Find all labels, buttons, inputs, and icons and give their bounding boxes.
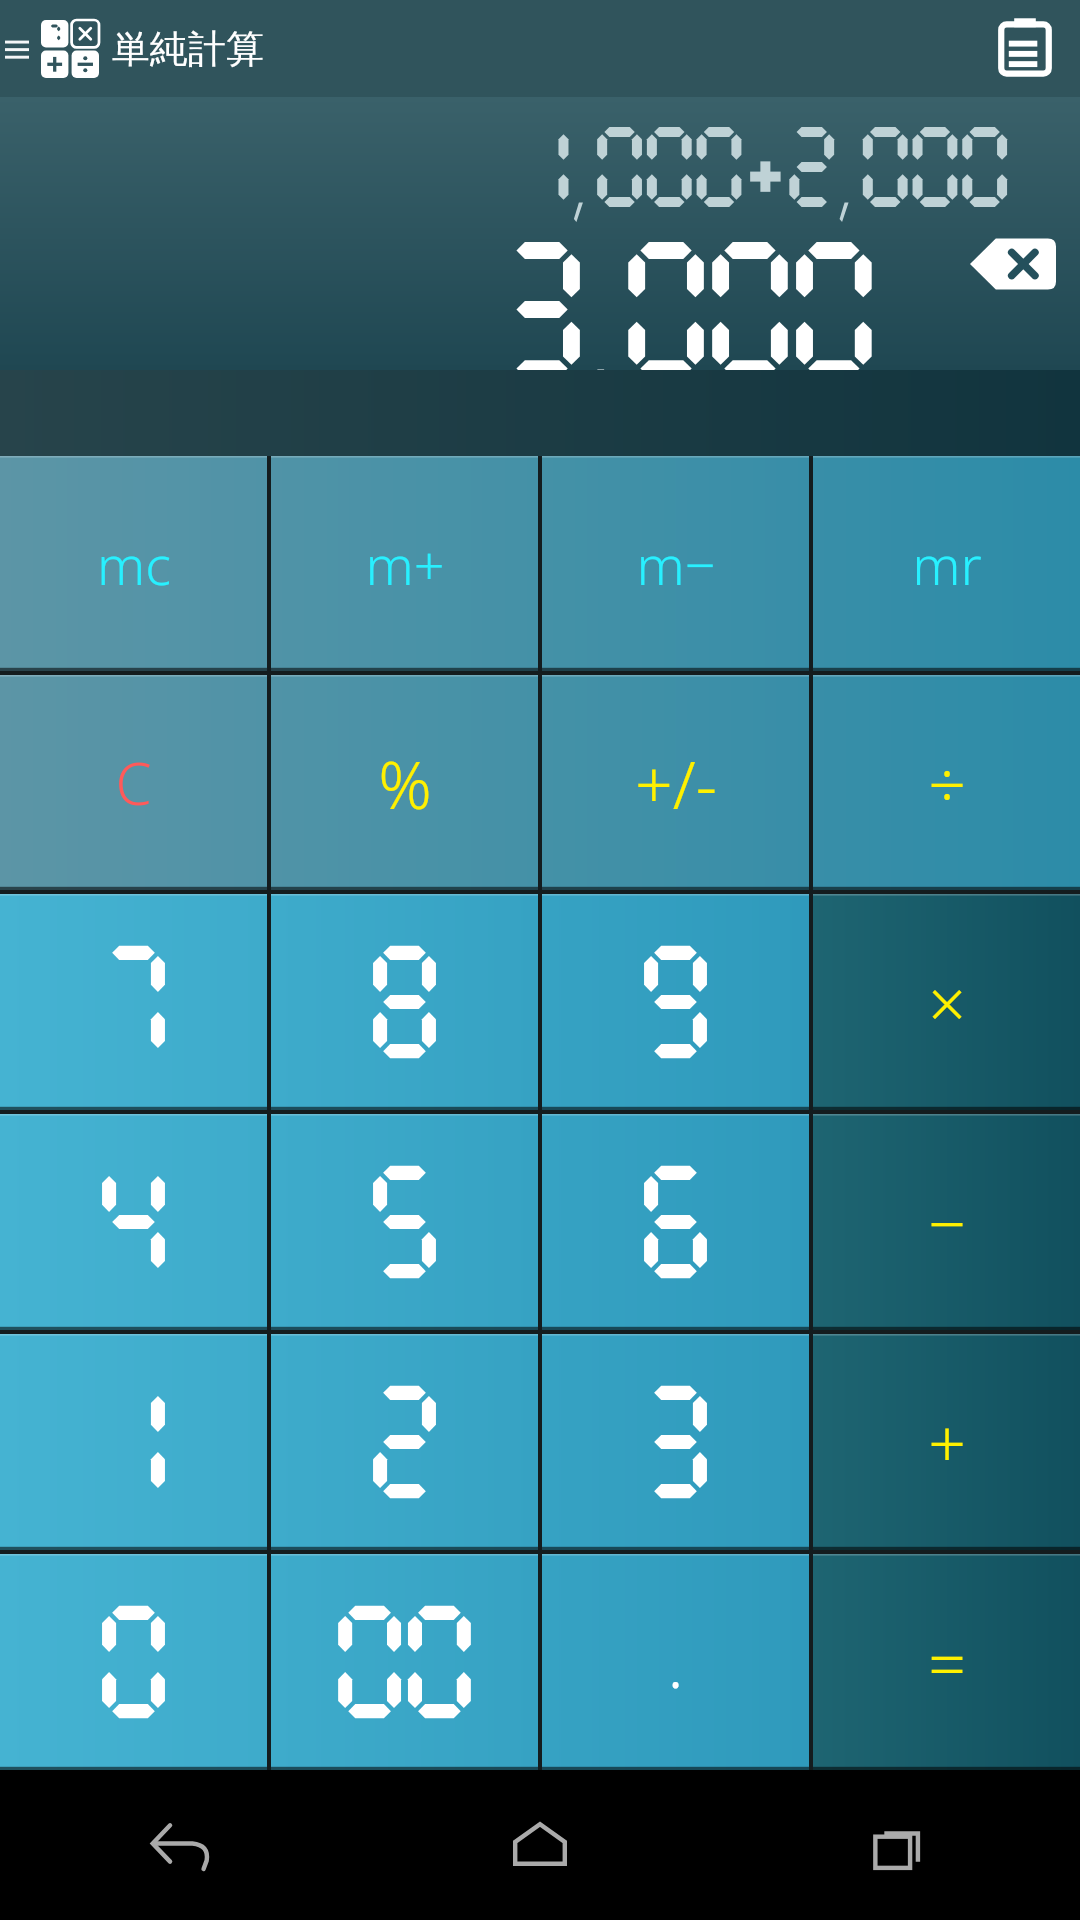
staticText: m+ [365, 527, 445, 601]
button[interactable]: History [970, 0, 1080, 97]
staticText: + [928, 1397, 966, 1487]
button[interactable] [542, 1334, 809, 1550]
staticText: 単純計算 [112, 25, 264, 73]
staticText: . [667, 1617, 684, 1707]
button[interactable]: Recent apps [720, 1770, 1080, 1920]
staticText: × [928, 957, 966, 1047]
button[interactable]: m+ [271, 456, 538, 671]
button[interactable] [271, 1114, 538, 1330]
button[interactable] [0, 894, 267, 1110]
button[interactable]: . [542, 1554, 809, 1770]
staticText: mr [912, 527, 982, 601]
button[interactable]: Backspace [970, 235, 1056, 293]
button[interactable]: ÷ [813, 675, 1080, 890]
button[interactable]: × [813, 894, 1080, 1110]
staticText: − [928, 1177, 966, 1267]
button[interactable] [0, 1554, 267, 1770]
button[interactable] [0, 1334, 267, 1550]
button[interactable] [271, 894, 538, 1110]
staticText: C [115, 743, 152, 822]
button[interactable]: Calculator [34, 0, 106, 97]
button[interactable]: Menu [0, 0, 34, 97]
button[interactable]: = [813, 1554, 1080, 1770]
button[interactable]: C [0, 675, 267, 890]
button[interactable] [271, 1554, 538, 1770]
button[interactable] [542, 894, 809, 1110]
button[interactable]: − [813, 1114, 1080, 1330]
button[interactable]: +/- [542, 675, 809, 890]
staticText: +/- [635, 738, 717, 828]
staticText: mc [97, 527, 171, 601]
staticText: m− [636, 527, 716, 601]
button[interactable] [0, 1114, 267, 1330]
button[interactable] [542, 1114, 809, 1330]
button[interactable]: m− [542, 456, 809, 671]
staticText: = [928, 1617, 966, 1707]
button[interactable]: Back [0, 1770, 360, 1920]
staticText: ÷ [928, 738, 966, 828]
button[interactable]: % [271, 675, 538, 890]
button[interactable] [271, 1334, 538, 1550]
button[interactable]: + [813, 1334, 1080, 1550]
button[interactable]: mc [0, 456, 267, 671]
button[interactable]: Home [360, 1770, 720, 1920]
staticText: % [378, 738, 432, 828]
button[interactable]: mr [813, 456, 1080, 671]
